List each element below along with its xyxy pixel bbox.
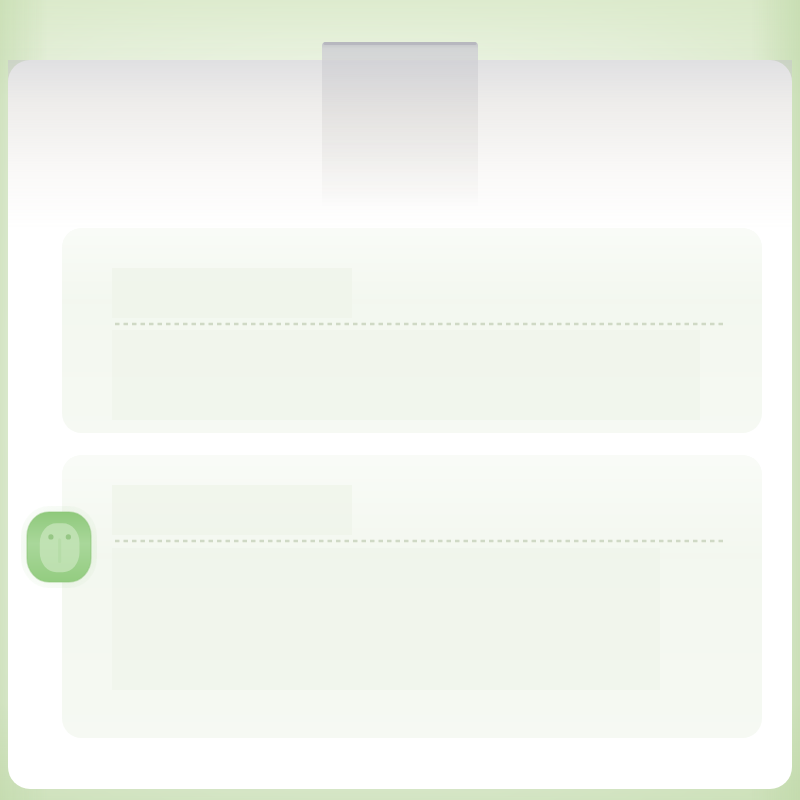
button[interactable]: Header <box>0 0 800 800</box>
button[interactable]: Card two <box>0 0 800 800</box>
button[interactable]: Profile avatar <box>0 0 800 800</box>
button[interactable]: Card one <box>0 0 800 800</box>
